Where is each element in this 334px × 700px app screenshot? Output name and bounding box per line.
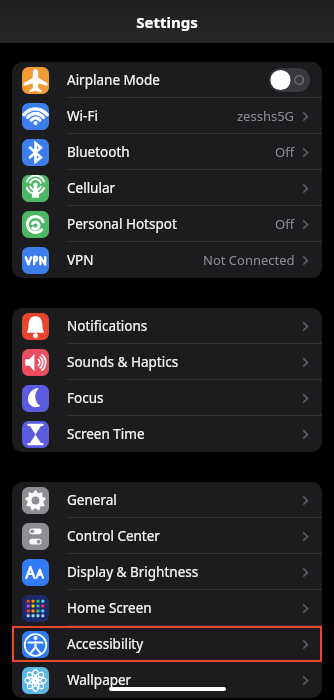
button[interactable]: Notifications — [12, 308, 322, 344]
staticText: Accessibility — [67, 635, 300, 653]
staticText: Airplane Mode — [67, 71, 269, 89]
staticText: Not Connected — [203, 251, 295, 269]
staticText: Screen Time — [67, 425, 300, 443]
staticText: Control Center — [67, 527, 300, 545]
button[interactable]: VPN — [12, 242, 322, 278]
staticText: General — [67, 491, 300, 509]
staticText: Notifications — [67, 317, 300, 335]
button[interactable]: Personal Hotspot — [12, 206, 322, 242]
staticText: Personal Hotspot — [67, 215, 275, 233]
button[interactable]: Wallpaper — [12, 662, 322, 698]
staticText: Home Screen — [67, 599, 300, 617]
button[interactable]: Focus — [12, 380, 322, 416]
staticText: VPN — [67, 251, 203, 269]
button[interactable]: Cellular — [12, 170, 322, 206]
button[interactable]: Airplane Mode toggle — [269, 68, 310, 92]
staticText: Sounds & Haptics — [67, 353, 300, 371]
button[interactable]: Accessibility — [12, 626, 322, 662]
staticText: Off — [275, 143, 295, 161]
staticText: Focus — [67, 389, 300, 407]
staticText: Settings — [136, 12, 198, 32]
staticText: zesshs5G — [237, 107, 295, 125]
button[interactable]: General — [12, 482, 322, 518]
button[interactable]: Display & Brightness — [12, 554, 322, 590]
staticText: Bluetooth — [67, 143, 275, 161]
button[interactable]: Screen Time — [12, 416, 322, 452]
button[interactable]: Wi-Fi — [12, 98, 322, 134]
staticText: Cellular — [67, 179, 300, 197]
staticText: Display & Brightness — [67, 563, 300, 581]
button[interactable]: Control Center — [12, 518, 322, 554]
button[interactable]: Home Screen — [12, 590, 322, 626]
button[interactable]: Bluetooth — [12, 134, 322, 170]
staticText: Wallpaper — [67, 671, 300, 689]
staticText: Off — [275, 215, 295, 233]
button[interactable]: Sounds & Haptics — [12, 344, 322, 380]
button[interactable]: Airplane Mode — [12, 62, 322, 98]
staticText: Wi-Fi — [67, 107, 237, 125]
